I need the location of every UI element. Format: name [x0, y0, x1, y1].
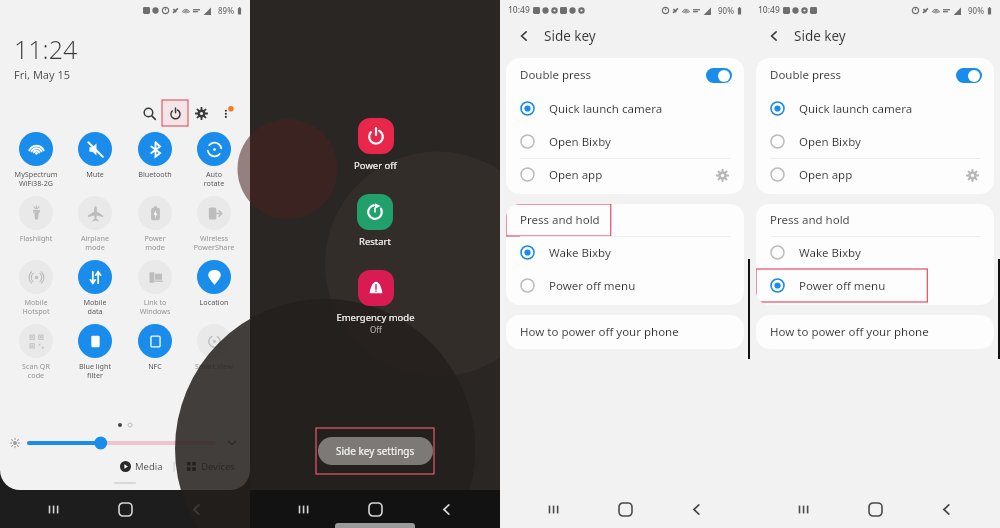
button[interactable]: Scan QR code — [7, 324, 65, 380]
staticText: Wake Bixby — [549, 245, 611, 261]
staticText: Mute — [66, 169, 124, 179]
staticText: Power off — [354, 159, 397, 172]
staticText: Media — [135, 460, 163, 473]
staticText: Off — [370, 324, 382, 335]
button[interactable]: Back — [512, 24, 536, 48]
staticText: Open Bixby — [549, 134, 611, 150]
button[interactable]: Expand — [224, 435, 240, 451]
button[interactable]: Restart — [357, 194, 393, 248]
button[interactable]: Settings — [188, 100, 214, 126]
button[interactable]: Choose app — [962, 165, 982, 185]
staticText: Side key settings — [336, 444, 415, 458]
staticText: Double press — [770, 67, 842, 83]
button[interactable]: MySpectrum WiFi38-2G — [7, 132, 65, 188]
button[interactable]: NFC — [126, 324, 184, 371]
button[interactable]: Flashlight — [7, 196, 65, 243]
button[interactable]: Media — [117, 457, 166, 476]
button[interactable]: Home — [858, 492, 892, 526]
staticText: Link to Windows — [126, 297, 184, 316]
staticText: Wake Bixby — [799, 245, 861, 261]
button[interactable]: Open app — [506, 158, 744, 191]
staticText: Side key — [544, 27, 596, 45]
staticText: NFC — [126, 361, 184, 371]
button[interactable]: Mobile data — [66, 260, 124, 316]
button[interactable]: Quick launch camera — [506, 92, 744, 125]
staticText: How to power off your phone — [520, 324, 679, 340]
staticText: Location — [185, 297, 243, 307]
button[interactable]: Home — [108, 492, 142, 526]
staticText: Flashlight — [7, 233, 65, 243]
staticText: Mobile Hotspot — [7, 297, 65, 316]
button[interactable]: Recents — [787, 492, 821, 526]
button[interactable]: Power — [162, 100, 188, 126]
staticText: 11:24 — [14, 32, 78, 66]
staticText: Fri, May 15 — [14, 67, 71, 82]
button[interactable]: Airplane mode — [66, 196, 124, 252]
staticText: MySpectrum WiFi38-2G — [7, 169, 65, 188]
button[interactable]: Back — [762, 24, 786, 48]
staticText: 10:49 — [508, 4, 530, 16]
button[interactable]: Side key settings — [318, 437, 433, 465]
staticText: Press and hold — [770, 212, 850, 228]
staticText: Power mode — [126, 233, 184, 252]
button[interactable]: Power off — [354, 118, 397, 172]
button[interactable]: Home — [358, 492, 392, 526]
button[interactable]: Double press — [506, 58, 744, 92]
staticText: 90% — [968, 5, 984, 16]
button[interactable]: Auto rotate — [185, 132, 243, 188]
staticText: Smart View — [185, 361, 243, 371]
button[interactable]: Search — [136, 100, 162, 126]
staticText: Emergency mode — [336, 311, 415, 324]
button[interactable]: Choose app — [712, 165, 732, 185]
staticText: Power off menu — [799, 278, 886, 294]
button[interactable]: Back — [429, 492, 463, 526]
button[interactable]: Double press — [756, 58, 994, 92]
button[interactable]: Wake Bixby — [506, 236, 744, 269]
staticText: Open Bixby — [799, 134, 861, 150]
button[interactable]: Mute — [66, 132, 124, 179]
button[interactable]: How to power off your phone — [756, 315, 994, 349]
staticText: How to power off your phone — [770, 324, 929, 340]
button[interactable]: Back — [679, 492, 713, 526]
button[interactable]: Back — [929, 492, 963, 526]
button[interactable]: Location — [185, 260, 243, 307]
button[interactable]: Bluetooth — [126, 132, 184, 179]
button[interactable]: Home — [608, 492, 642, 526]
button[interactable]: Quick launch camera — [756, 92, 994, 125]
button[interactable]: Blue light filter — [66, 324, 124, 380]
button[interactable]: Power off menu — [506, 269, 744, 302]
staticText: Quick launch camera — [799, 101, 913, 117]
button[interactable]: Power mode — [126, 196, 184, 252]
staticText: Restart — [359, 235, 391, 248]
button[interactable]: Recents — [287, 492, 321, 526]
staticText: Bluetooth — [126, 169, 184, 179]
button[interactable]: Open Bixby — [756, 125, 994, 158]
button[interactable]: How to power off your phone — [506, 315, 744, 349]
button[interactable]: More options — [214, 100, 240, 126]
staticText: 90% — [718, 5, 734, 16]
staticText: Wireless PowerShare — [185, 233, 243, 252]
staticText: Quick launch camera — [549, 101, 663, 117]
staticText: 89% — [218, 5, 234, 16]
button[interactable]: Wake Bixby — [756, 236, 994, 269]
staticText: Blue light filter — [66, 361, 124, 380]
button[interactable]: Recents — [537, 492, 571, 526]
button[interactable]: Power off menu — [756, 269, 994, 302]
button[interactable]: Open Bixby — [506, 125, 744, 158]
button[interactable]: Recents — [37, 492, 71, 526]
button[interactable]: Link to Windows — [126, 260, 184, 316]
staticText: Mobile data — [66, 297, 124, 316]
button[interactable]: Devices — [183, 457, 238, 476]
staticText: Open app — [799, 167, 853, 183]
staticText: Double press — [520, 67, 592, 83]
button[interactable]: Open app — [756, 158, 994, 191]
button[interactable]: Wireless PowerShare — [185, 196, 243, 252]
staticText: Airplane mode — [66, 233, 124, 252]
button[interactable]: Smart View — [185, 324, 243, 371]
staticText: Scan QR code — [7, 361, 65, 380]
staticText: Devices — [201, 460, 235, 473]
staticText: Side key — [794, 27, 846, 45]
button[interactable]: Mobile Hotspot — [7, 260, 65, 316]
button[interactable]: Back — [179, 492, 213, 526]
button[interactable]: Emergency mode — [336, 270, 415, 335]
